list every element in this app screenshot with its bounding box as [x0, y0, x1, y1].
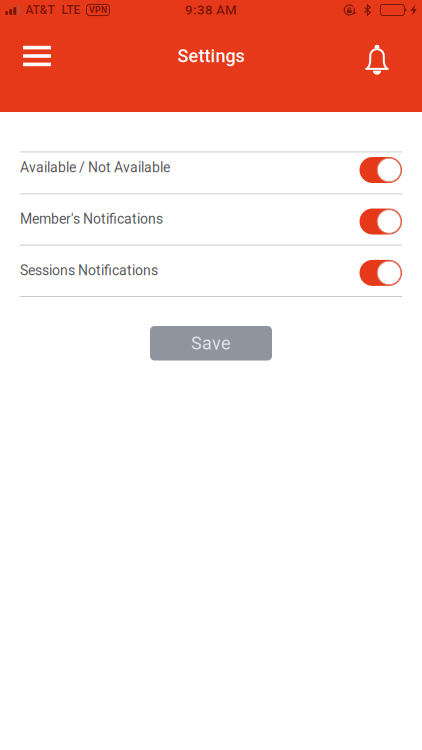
staticText: Save [191, 333, 231, 354]
staticText: Available / Not Available [20, 159, 170, 176]
button[interactable]: Notifications [351, 30, 403, 82]
staticText: VPN [89, 5, 107, 15]
button[interactable]: Sessions Notifications [0, 246, 422, 297]
staticText: LTE [61, 3, 80, 17]
staticText: 9:38 AM [185, 2, 237, 18]
staticText: Settings [177, 45, 244, 67]
button[interactable]: Member's Notifications [0, 194, 422, 246]
button[interactable]: Save [150, 326, 272, 360]
staticText: Member's Notifications [20, 211, 163, 227]
button[interactable]: Menu [11, 30, 63, 82]
button[interactable]: Available / Not Available [0, 152, 422, 194]
staticText: AT&T [25, 3, 54, 17]
staticText: Sessions Notifications [20, 262, 158, 279]
